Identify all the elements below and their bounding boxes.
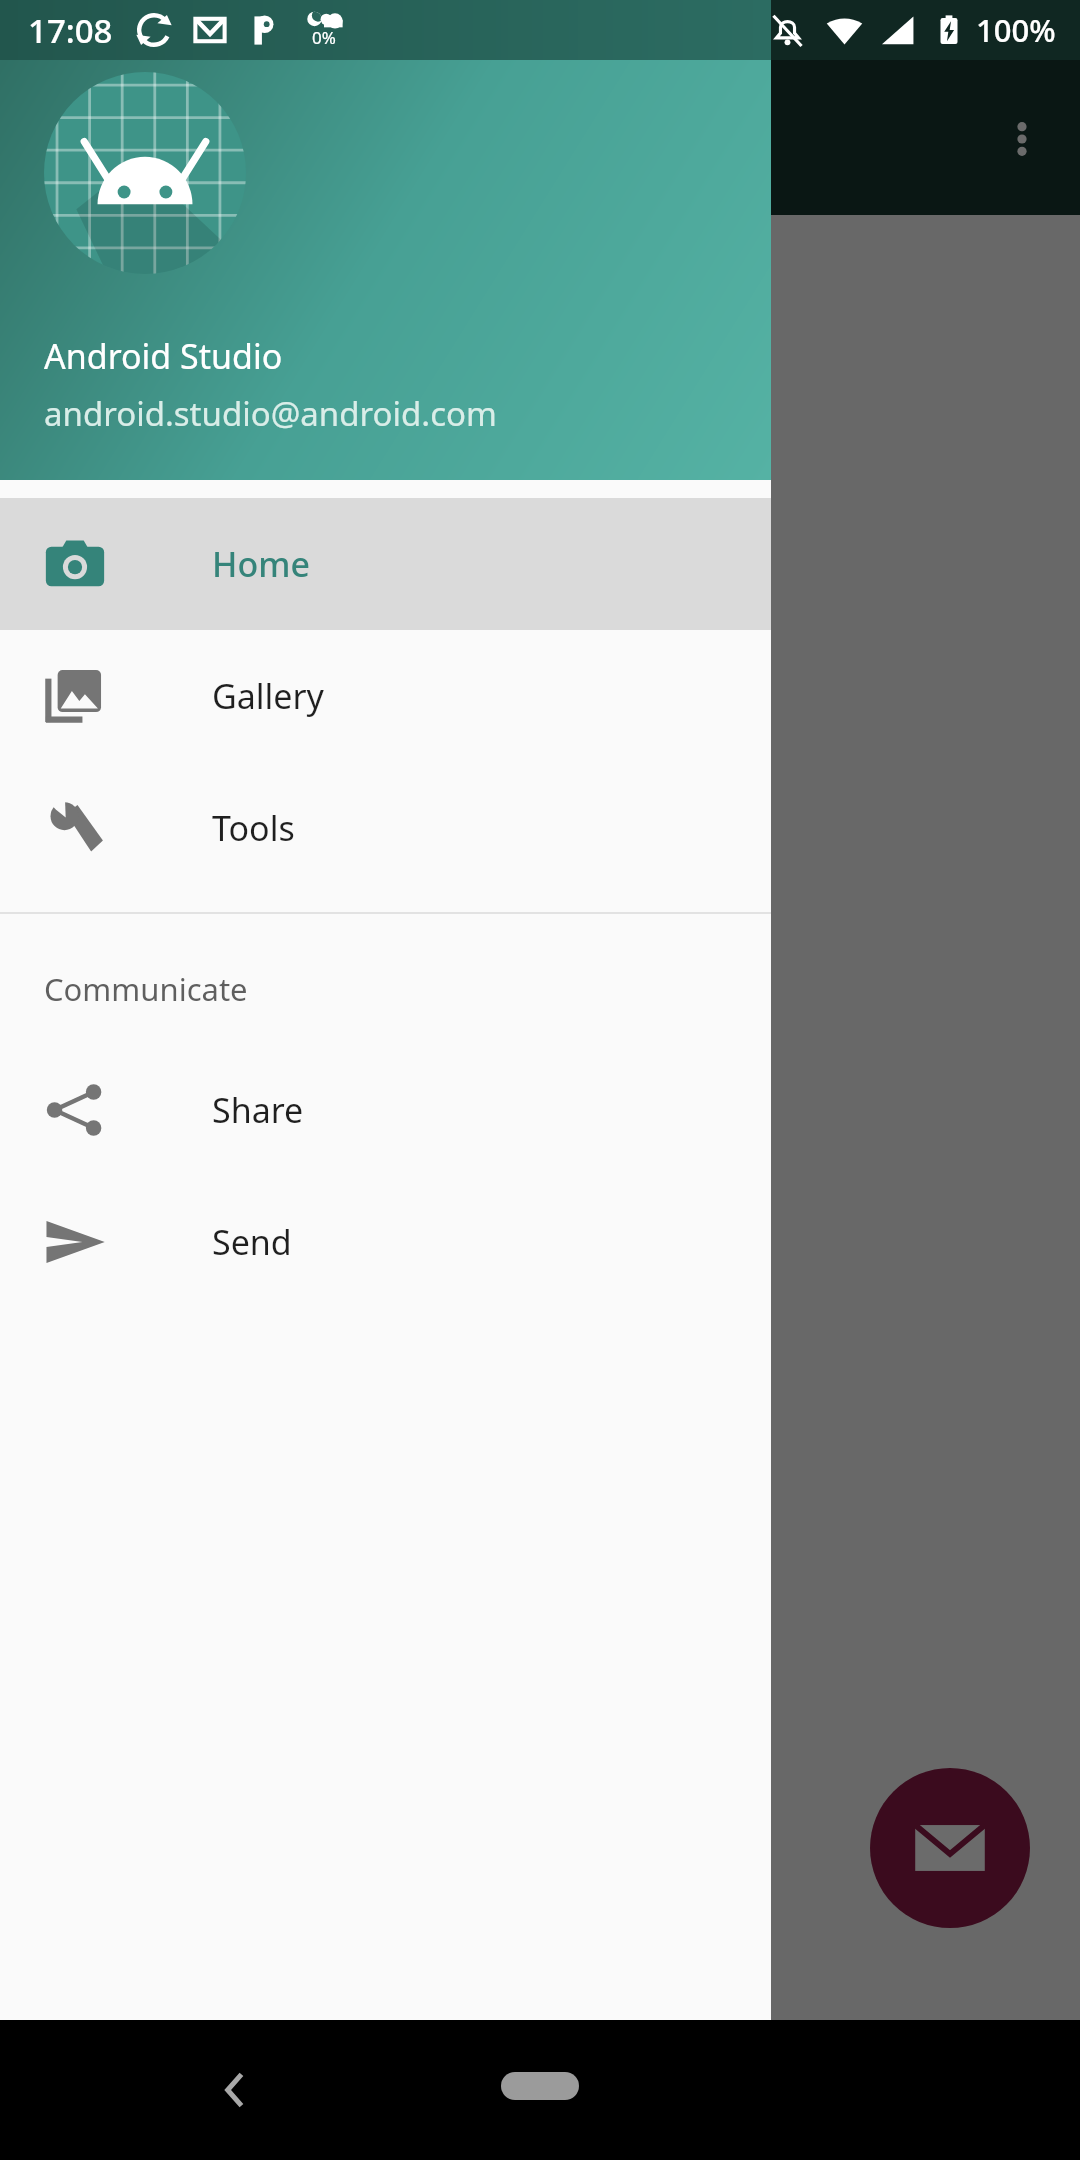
button[interactable]: Share [0, 1044, 771, 1176]
staticText: Tools [212, 805, 295, 851]
button[interactable]: Home [0, 498, 771, 630]
staticText: Android Studio [44, 263, 269, 307]
staticText: Communicate [44, 968, 248, 1010]
staticText: Android Studio [44, 333, 283, 379]
button[interactable]: Send [0, 1176, 771, 1308]
staticText: android.studio@android.com [44, 391, 497, 436]
staticText: 17:08 [28, 8, 113, 53]
button[interactable]: More options [984, 101, 1060, 177]
button[interactable]: Home [501, 2072, 579, 2100]
button[interactable]: Compose email [870, 1768, 1030, 1928]
button[interactable]: Gallery [0, 630, 771, 762]
staticText: Gallery [212, 673, 324, 719]
staticText: 100% [976, 9, 1056, 51]
staticText: 0% [312, 26, 336, 49]
staticText: Send [212, 1219, 292, 1265]
staticText: Share [212, 1087, 304, 1133]
button[interactable]: Back [212, 2067, 258, 2113]
button[interactable]: Tools [0, 762, 771, 894]
staticText: Home [212, 541, 310, 587]
